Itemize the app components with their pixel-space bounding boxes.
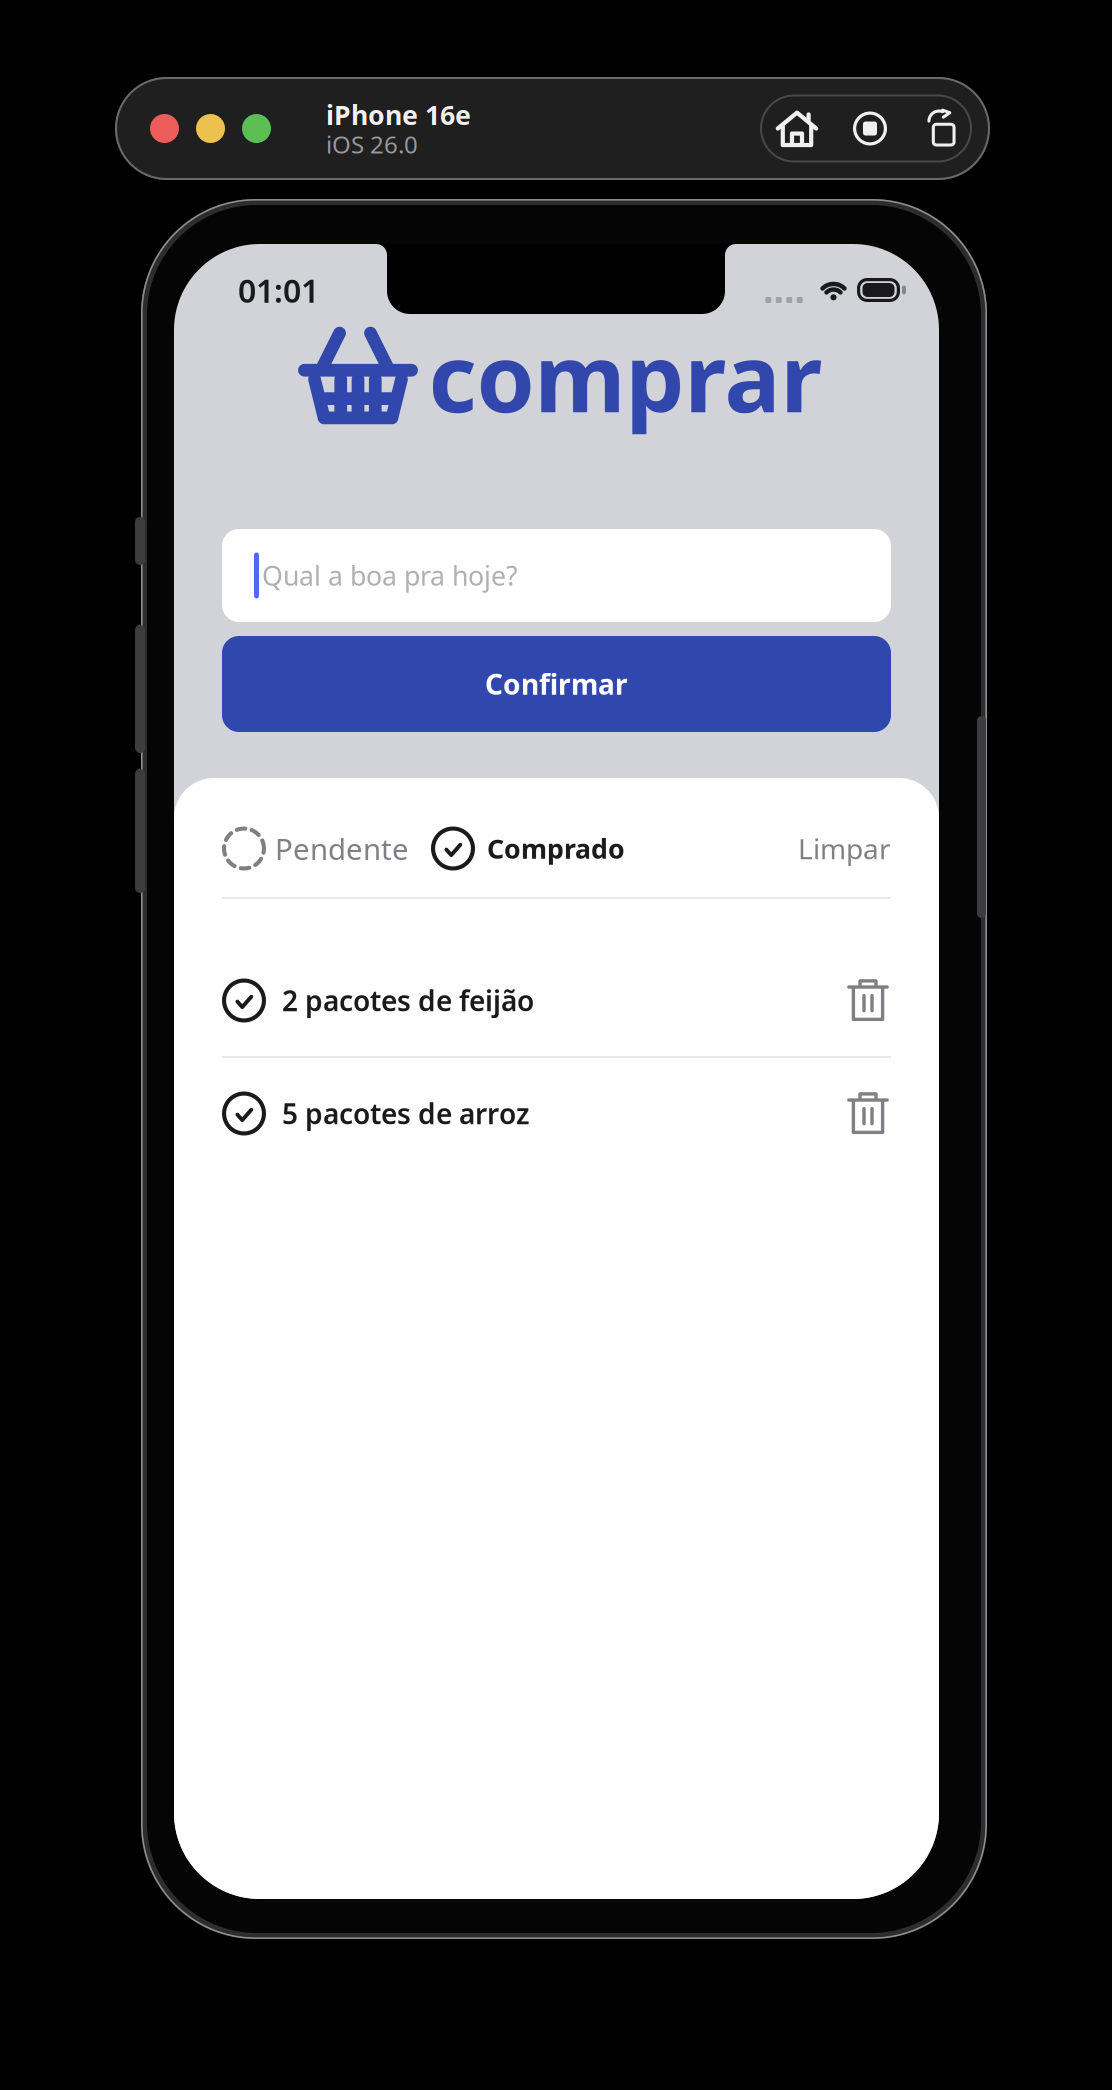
button[interactable]: Confirmar (222, 636, 891, 732)
staticText: Limpar (798, 830, 891, 867)
staticText: iOS 26.0 (326, 128, 418, 160)
button[interactable]: Limpar (798, 830, 891, 867)
staticText: iPhone 16e (326, 97, 471, 132)
button[interactable]: Home (760, 94, 834, 162)
button[interactable]: Pendente (222, 826, 409, 870)
staticText: Pendente (275, 829, 409, 868)
button[interactable]: Excluir 5 pacotes de arroz (839, 1084, 897, 1142)
button[interactable]: Qual a boa pra hoje? (222, 529, 891, 622)
staticText: 01:01 (238, 269, 319, 311)
button[interactable]: Comprado (431, 826, 625, 870)
staticText: Comprado (487, 831, 625, 866)
staticText: Confirmar (485, 665, 628, 703)
button[interactable]: Excluir 2 pacotes de feijão (839, 971, 897, 1029)
staticText: 5 pacotes de arroz (282, 1095, 530, 1132)
button[interactable]: 5 pacotes de arroz (222, 1091, 530, 1135)
button[interactable]: 2 pacotes de feijão (222, 978, 534, 1022)
staticText: comprar (428, 314, 822, 438)
button[interactable]: Rotate (906, 94, 972, 162)
staticText: 2 pacotes de feijão (282, 982, 534, 1019)
button[interactable]: Screenshot (834, 94, 906, 162)
staticText: Qual a boa pra hoje? (262, 558, 518, 593)
